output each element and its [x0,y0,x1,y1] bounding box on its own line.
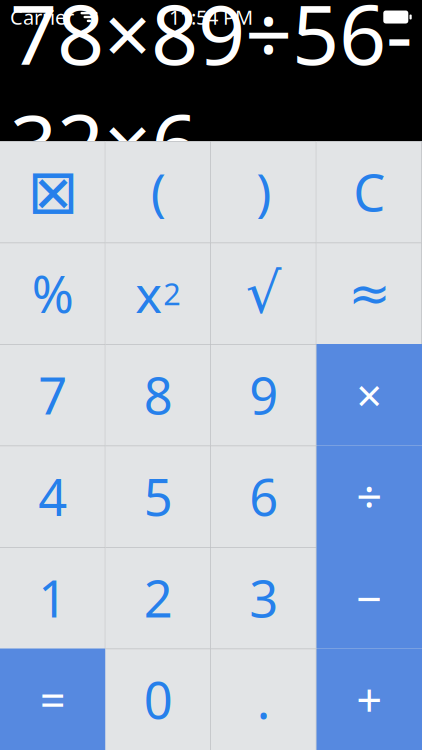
staticText: . [257,666,271,733]
staticText: + [356,669,382,729]
button[interactable]: x squared [105,242,211,344]
staticText: 78×89÷56-32×6 [10,0,413,197]
button[interactable]: ( [105,141,211,242]
staticText: = [40,669,66,729]
staticText: 2 [163,273,181,314]
staticText: x [135,260,162,327]
staticText: 11:54 PM [169,4,253,30]
staticText: 8 [144,361,173,428]
staticText: ) [256,158,271,225]
button[interactable]: Equals [0,648,105,750]
staticText: ÷ [356,466,382,526]
button[interactable]: C [316,141,422,242]
button[interactable]: Plus [316,648,422,750]
button[interactable]: 5 [105,445,211,547]
button[interactable]: 8 [105,344,211,445]
button[interactable]: Decimal point [211,648,316,750]
button[interactable]: 0 [105,648,211,750]
staticText: % [32,260,74,327]
staticText: C [353,158,385,225]
button[interactable]: 9 [211,344,316,445]
staticText: 0 [144,666,173,733]
staticText: 6 [249,463,278,530]
staticText: 3 [249,564,278,631]
button[interactable]: 3 [211,547,316,648]
button[interactable]: Divide [316,445,422,547]
button[interactable]: Delete [0,141,105,242]
staticText: × [356,365,382,425]
button[interactable]: 6 [211,445,316,547]
staticText: 5 [144,463,173,530]
button[interactable]: Minus [316,547,422,648]
button[interactable]: Square root [211,242,316,344]
staticText: 9 [249,361,278,428]
button[interactable]: Approximately equal [316,242,422,344]
button[interactable]: Multiply [316,344,422,445]
button[interactable]: 7 [0,344,105,445]
button[interactable]: ) [211,141,316,242]
staticText: − [356,568,382,628]
staticText: √ [246,261,282,325]
staticText: ≈ [348,264,390,322]
staticText: Carrier [10,4,74,30]
staticText: ⊠ [27,157,78,226]
button[interactable]: 2 [105,547,211,648]
staticText: 1 [38,564,67,631]
staticText: 7 [38,361,67,428]
staticText: ( [151,158,166,225]
staticText: 2 [144,564,173,631]
button[interactable]: 4 [0,445,105,547]
button[interactable]: % [0,242,105,344]
button[interactable]: 1 [0,547,105,648]
staticText: 4 [38,463,67,530]
